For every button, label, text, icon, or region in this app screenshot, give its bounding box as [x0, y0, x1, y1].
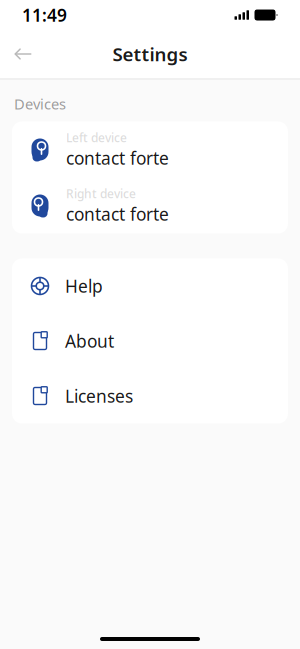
button[interactable]: Left device	[12, 121, 288, 177]
staticText: Settings	[112, 42, 187, 66]
staticText: Licenses	[65, 384, 133, 407]
staticText: Devices	[14, 94, 66, 113]
staticText: Left device	[66, 129, 127, 145]
button[interactable]: About	[12, 313, 288, 368]
staticText: About	[65, 329, 114, 352]
staticText: Help	[65, 274, 103, 297]
button[interactable]: Right device	[12, 177, 288, 233]
button[interactable]: Back	[6, 37, 40, 71]
staticText: Right device	[66, 185, 136, 201]
staticText: contact forte	[66, 202, 169, 225]
staticText: contact forte	[66, 146, 169, 169]
button[interactable]: Help	[12, 258, 288, 313]
staticText: 11:49	[22, 3, 67, 26]
button[interactable]: Licenses	[12, 368, 288, 423]
